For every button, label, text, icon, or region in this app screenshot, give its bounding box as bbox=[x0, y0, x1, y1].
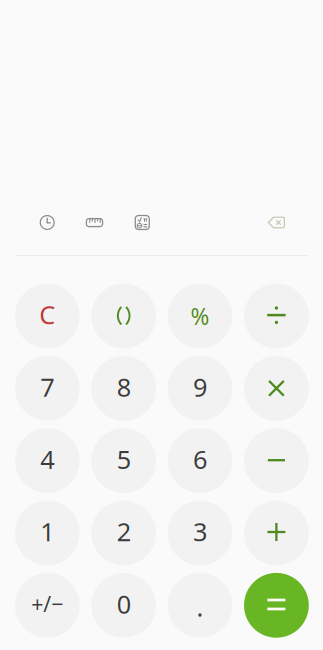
staticText: 8 bbox=[117, 370, 131, 404]
staticText: 0 bbox=[117, 587, 131, 621]
staticText: C bbox=[39, 298, 55, 331]
button[interactable]: Multiply bbox=[244, 356, 309, 421]
button[interactable]: 6 bbox=[168, 428, 232, 493]
button[interactable]: 1 bbox=[15, 501, 80, 565]
staticText: 6 bbox=[193, 442, 207, 476]
button[interactable]: C bbox=[15, 284, 80, 348]
button[interactable]: History bbox=[35, 210, 59, 234]
button[interactable]: Subtract bbox=[244, 428, 309, 493]
button[interactable]: 9 bbox=[168, 356, 232, 421]
button[interactable]: Add bbox=[244, 501, 309, 565]
staticText: % bbox=[190, 301, 209, 331]
staticText: . bbox=[196, 590, 203, 624]
button[interactable]: 0 bbox=[91, 573, 156, 638]
staticText: 5 bbox=[117, 442, 131, 476]
staticText: 4 bbox=[40, 442, 54, 476]
button[interactable]: Equals bbox=[244, 573, 309, 638]
staticText: 3 bbox=[193, 515, 207, 548]
button[interactable]: % bbox=[168, 284, 232, 348]
button[interactable]: 8 bbox=[91, 356, 156, 421]
button[interactable]: 7 bbox=[15, 356, 80, 421]
staticText: 1 bbox=[40, 515, 54, 548]
staticText: 2 bbox=[117, 515, 131, 548]
button[interactable]: 5 bbox=[91, 428, 156, 493]
staticText: 9 bbox=[193, 370, 207, 404]
button[interactable]: Scientific calculator bbox=[130, 210, 154, 234]
button[interactable]: 4 bbox=[15, 428, 80, 493]
button[interactable]: Unit converter bbox=[82, 210, 106, 234]
staticText: +/− bbox=[31, 590, 63, 618]
button[interactable]: +/− bbox=[15, 573, 80, 638]
staticText: 7 bbox=[40, 370, 54, 404]
button[interactable]: Divide bbox=[244, 284, 309, 348]
button[interactable]: Backspace bbox=[265, 210, 289, 234]
button[interactable]: 3 bbox=[168, 501, 232, 565]
button[interactable]: . bbox=[168, 573, 232, 638]
button[interactable]: Parentheses bbox=[91, 284, 156, 348]
button[interactable]: 2 bbox=[91, 501, 156, 565]
